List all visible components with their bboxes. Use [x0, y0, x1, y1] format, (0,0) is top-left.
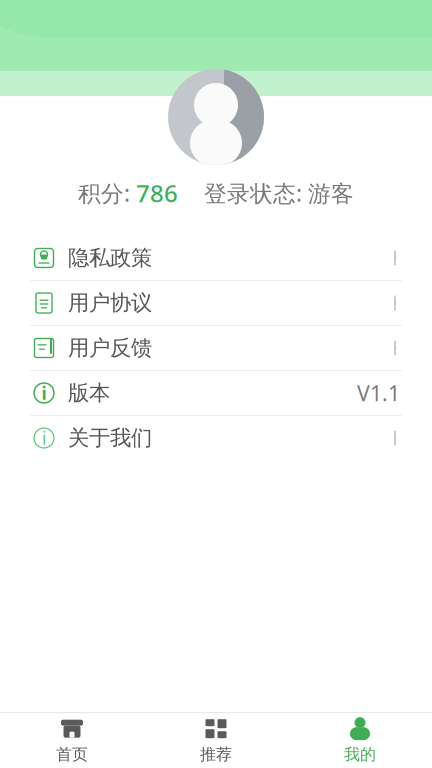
button[interactable]: 用户协议 — [0, 281, 432, 325]
staticText: 用户协议 — [68, 290, 152, 316]
button[interactable]: i — [0, 371, 432, 415]
staticText: 版本 — [68, 380, 110, 406]
button[interactable]: 我的 — [288, 709, 432, 768]
staticText: 我的 — [344, 745, 376, 764]
button[interactable]: 用户反馈 — [0, 326, 432, 370]
staticText: 首页 — [56, 745, 88, 764]
staticText: i — [41, 381, 46, 404]
button[interactable]: 推荐 — [144, 709, 288, 768]
staticText: 关于我们 — [68, 425, 152, 451]
staticText: 786 — [136, 177, 178, 209]
staticText: 推荐 — [200, 745, 232, 764]
staticText: 隐私政策 — [68, 245, 152, 271]
button[interactable]: 首页 — [0, 709, 144, 768]
staticText: 积分: — [78, 178, 136, 208]
staticText: 登录状态: 游客 — [204, 178, 354, 208]
button[interactable]: 隐私政策 — [0, 236, 432, 280]
button[interactable]: i — [0, 416, 432, 460]
staticText: 用户反馈 — [68, 335, 152, 361]
staticText: V1.1 — [357, 379, 400, 407]
staticText: i — [42, 426, 46, 449]
